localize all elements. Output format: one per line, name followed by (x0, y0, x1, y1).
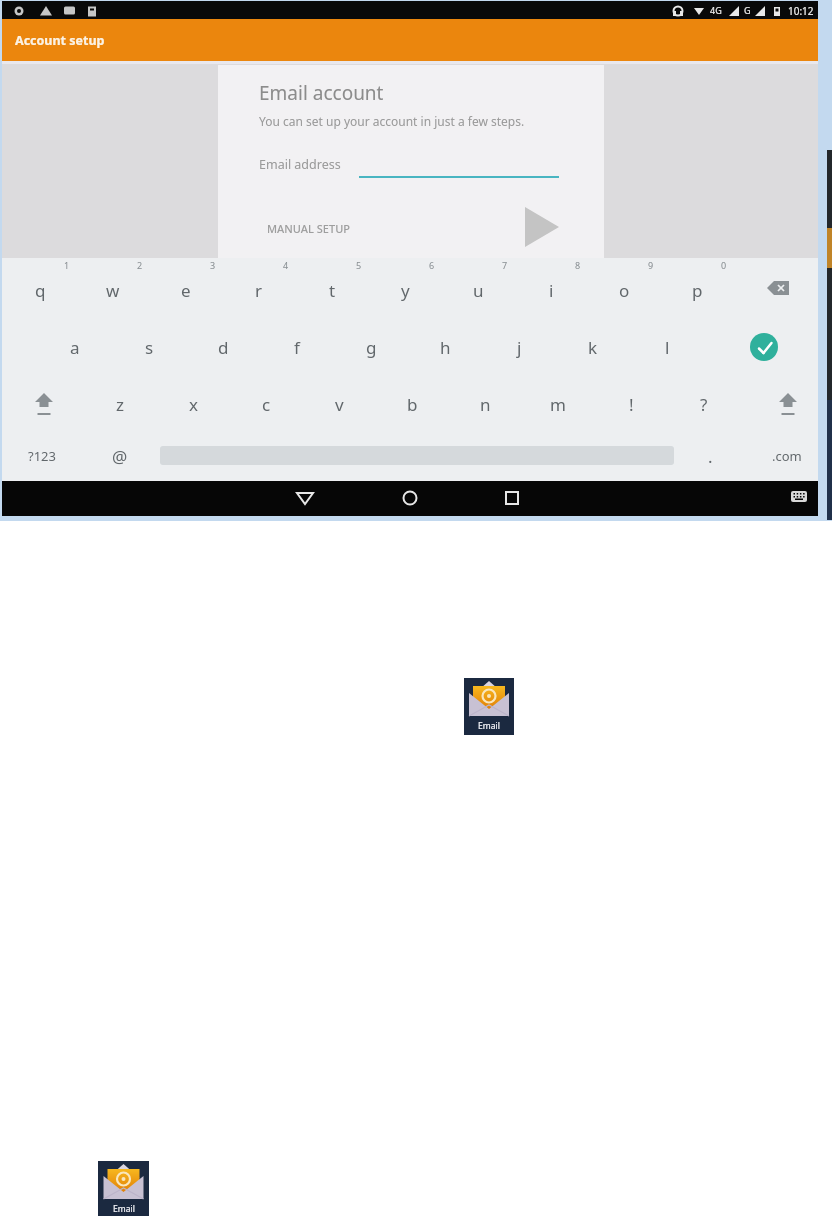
staticText: h (440, 336, 451, 359)
button[interactable]: s (125, 333, 173, 361)
staticText: r (255, 279, 263, 302)
staticText: p (692, 279, 703, 302)
staticText: Email (478, 720, 500, 732)
button[interactable] (513, 203, 563, 251)
button[interactable]: b (388, 390, 436, 418)
staticText: . (708, 445, 713, 468)
button[interactable]: k (569, 333, 617, 361)
staticText: 4G (710, 4, 722, 16)
button[interactable]: a (51, 333, 99, 361)
button[interactable] (750, 333, 778, 361)
staticText: You can set up your account in just a fe… (259, 113, 525, 129)
staticText: Email address (259, 156, 341, 173)
staticText: 10:12 (788, 4, 814, 18)
staticText: Account setup (15, 32, 105, 49)
staticText: MANUAL SETUP (267, 221, 350, 236)
button[interactable]: z (96, 390, 144, 418)
staticText: f (294, 336, 300, 359)
button[interactable] (26, 390, 62, 420)
button[interactable]: i (527, 276, 575, 304)
button[interactable]: . (686, 442, 734, 470)
button[interactable]: g (347, 333, 395, 361)
button[interactable] (754, 274, 802, 302)
button[interactable] (788, 487, 812, 509)
staticText: 6 (429, 259, 435, 271)
button[interactable]: m (534, 390, 582, 418)
button[interactable]: q (16, 276, 64, 304)
staticText: c (262, 393, 271, 416)
staticText: 3 (210, 259, 216, 271)
button[interactable]: ?123 (18, 442, 66, 470)
staticText: 9 (648, 259, 654, 271)
button[interactable]: j (495, 333, 543, 361)
button[interactable]: f (273, 333, 321, 361)
staticText: Email (113, 1203, 135, 1215)
button[interactable]: t (308, 276, 356, 304)
staticText: n (480, 393, 491, 416)
button[interactable]: y (381, 276, 429, 304)
button[interactable] (290, 485, 320, 511)
button[interactable] (497, 485, 527, 511)
staticText: 1 (64, 259, 70, 271)
button[interactable] (770, 390, 806, 420)
staticText: 2 (137, 259, 143, 271)
staticText: t (329, 279, 336, 302)
staticText: @ (112, 445, 128, 468)
staticText: i (549, 279, 554, 302)
button[interactable]: Email (98, 1161, 149, 1216)
staticText: ?123 (28, 447, 56, 465)
staticText: w (106, 279, 120, 302)
staticText: u (473, 279, 484, 302)
staticText: s (145, 336, 154, 359)
staticText: Email account (259, 80, 384, 106)
button[interactable]: v (315, 390, 363, 418)
button[interactable]: x (169, 390, 217, 418)
staticText: g (366, 336, 377, 359)
button[interactable]: o (600, 276, 648, 304)
staticText: 5 (356, 259, 362, 271)
staticText: b (407, 393, 418, 416)
staticText: k (588, 336, 598, 359)
button[interactable] (395, 485, 425, 511)
button[interactable]: ! (607, 390, 655, 418)
button[interactable]: l (643, 333, 691, 361)
staticText: d (218, 336, 229, 359)
button[interactable]: c (242, 390, 290, 418)
staticText: m (550, 393, 566, 416)
button[interactable]: n (461, 390, 509, 418)
button[interactable]: Email (464, 678, 514, 735)
staticText: G (744, 4, 751, 16)
staticText: q (35, 279, 46, 302)
staticText: 7 (502, 259, 508, 271)
button[interactable]: .com (763, 442, 811, 470)
staticText: ! (629, 393, 634, 416)
staticText: a (70, 336, 80, 359)
button[interactable]: u (454, 276, 502, 304)
staticText: y (401, 279, 410, 302)
button[interactable]: Email address (259, 150, 589, 184)
staticText: 8 (575, 259, 581, 271)
staticText: o (619, 279, 630, 302)
button[interactable]: r (235, 276, 283, 304)
staticText: 4 (283, 259, 289, 271)
staticText: l (665, 336, 670, 359)
staticText: z (116, 393, 124, 416)
staticText: ? (700, 393, 708, 416)
button[interactable]: w (89, 276, 137, 304)
button[interactable]: ? (680, 390, 728, 418)
staticText: j (517, 336, 522, 359)
button[interactable]: h (421, 333, 469, 361)
button[interactable]: e (162, 276, 210, 304)
button[interactable]: MANUAL SETUP (254, 213, 364, 243)
staticText: 0 (721, 259, 727, 271)
staticText: v (335, 393, 344, 416)
staticText: e (181, 279, 191, 302)
staticText: .com (772, 447, 802, 465)
button[interactable]: @ (96, 442, 144, 470)
button[interactable]: p (673, 276, 721, 304)
button[interactable]: d (199, 333, 247, 361)
staticText: x (189, 393, 198, 416)
